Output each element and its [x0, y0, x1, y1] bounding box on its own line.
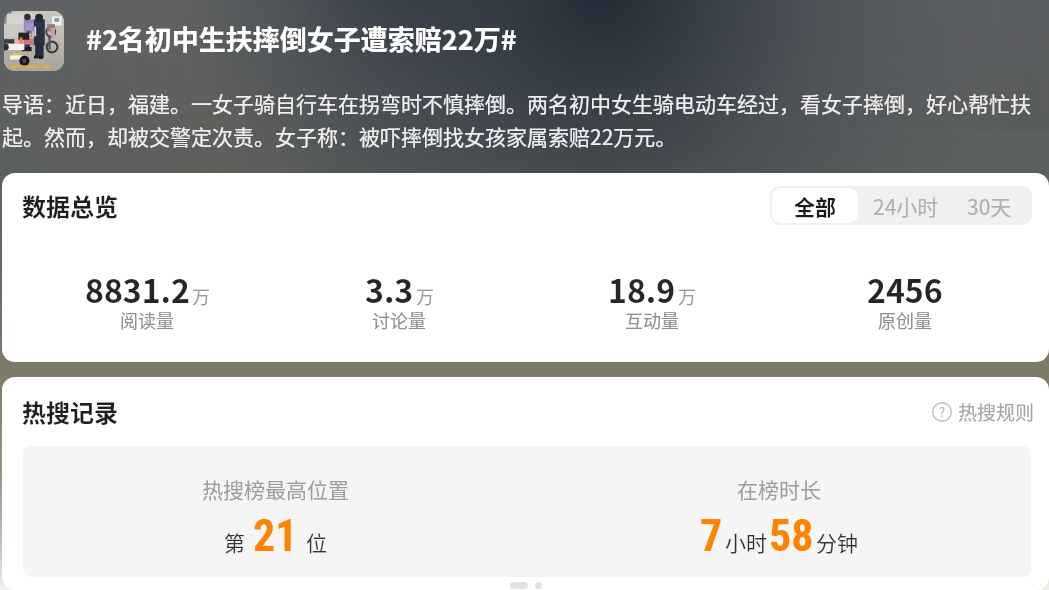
button[interactable]: 全部 [772, 188, 858, 223]
staticText: 分钟 [816, 527, 858, 557]
staticText: 数据总览 [22, 188, 118, 223]
staticText: 3.3 [365, 266, 414, 312]
staticText: 第 [224, 527, 245, 557]
staticText: 18.9 [608, 266, 676, 312]
staticText: 全部 [794, 191, 836, 221]
button[interactable]: 2456 [778, 266, 1031, 328]
button[interactable]: 3.3 [273, 266, 525, 328]
staticText: #2名初中生扶摔倒女子遭索赔22万# [86, 19, 517, 58]
staticText: 万 [416, 283, 434, 309]
staticText: 24小时 [873, 191, 939, 221]
button[interactable]: ? [932, 398, 1035, 426]
staticText: 万 [678, 283, 696, 309]
staticText: 30天 [967, 191, 1012, 221]
staticText: 互动量 [625, 307, 679, 333]
staticText: 2456 [867, 266, 943, 312]
staticText: 讨论量 [372, 307, 426, 333]
staticText: 热搜规则 [958, 398, 1035, 426]
button[interactable]: 8831.2 [21, 266, 273, 328]
staticText: 阅读量 [120, 307, 174, 333]
staticText: 7 [700, 510, 723, 562]
staticText: 位 [306, 527, 327, 557]
staticText: 热搜榜最高位置 [202, 474, 349, 504]
staticText: 在榜时长 [737, 474, 821, 504]
staticText: 58 [769, 510, 814, 562]
staticText: ? [939, 402, 946, 421]
button[interactable]: 24小时 [860, 186, 953, 225]
button[interactable]: Topic image [4, 11, 64, 71]
button[interactable]: 30天 [953, 186, 1032, 225]
staticText: 8831.2 [85, 266, 190, 312]
staticText: 热搜记录 [22, 394, 118, 429]
staticText: 原创量 [878, 307, 932, 333]
staticText: 万 [192, 283, 210, 309]
button[interactable]: 18.9 [525, 266, 778, 328]
staticText: 小时 [725, 527, 767, 557]
staticText: 21 [253, 510, 298, 562]
staticText: 导语：近日，福建。一女子骑自行车在拐弯时不慎摔倒。两名初中女生骑电动车经过，看女… [2, 88, 1049, 151]
